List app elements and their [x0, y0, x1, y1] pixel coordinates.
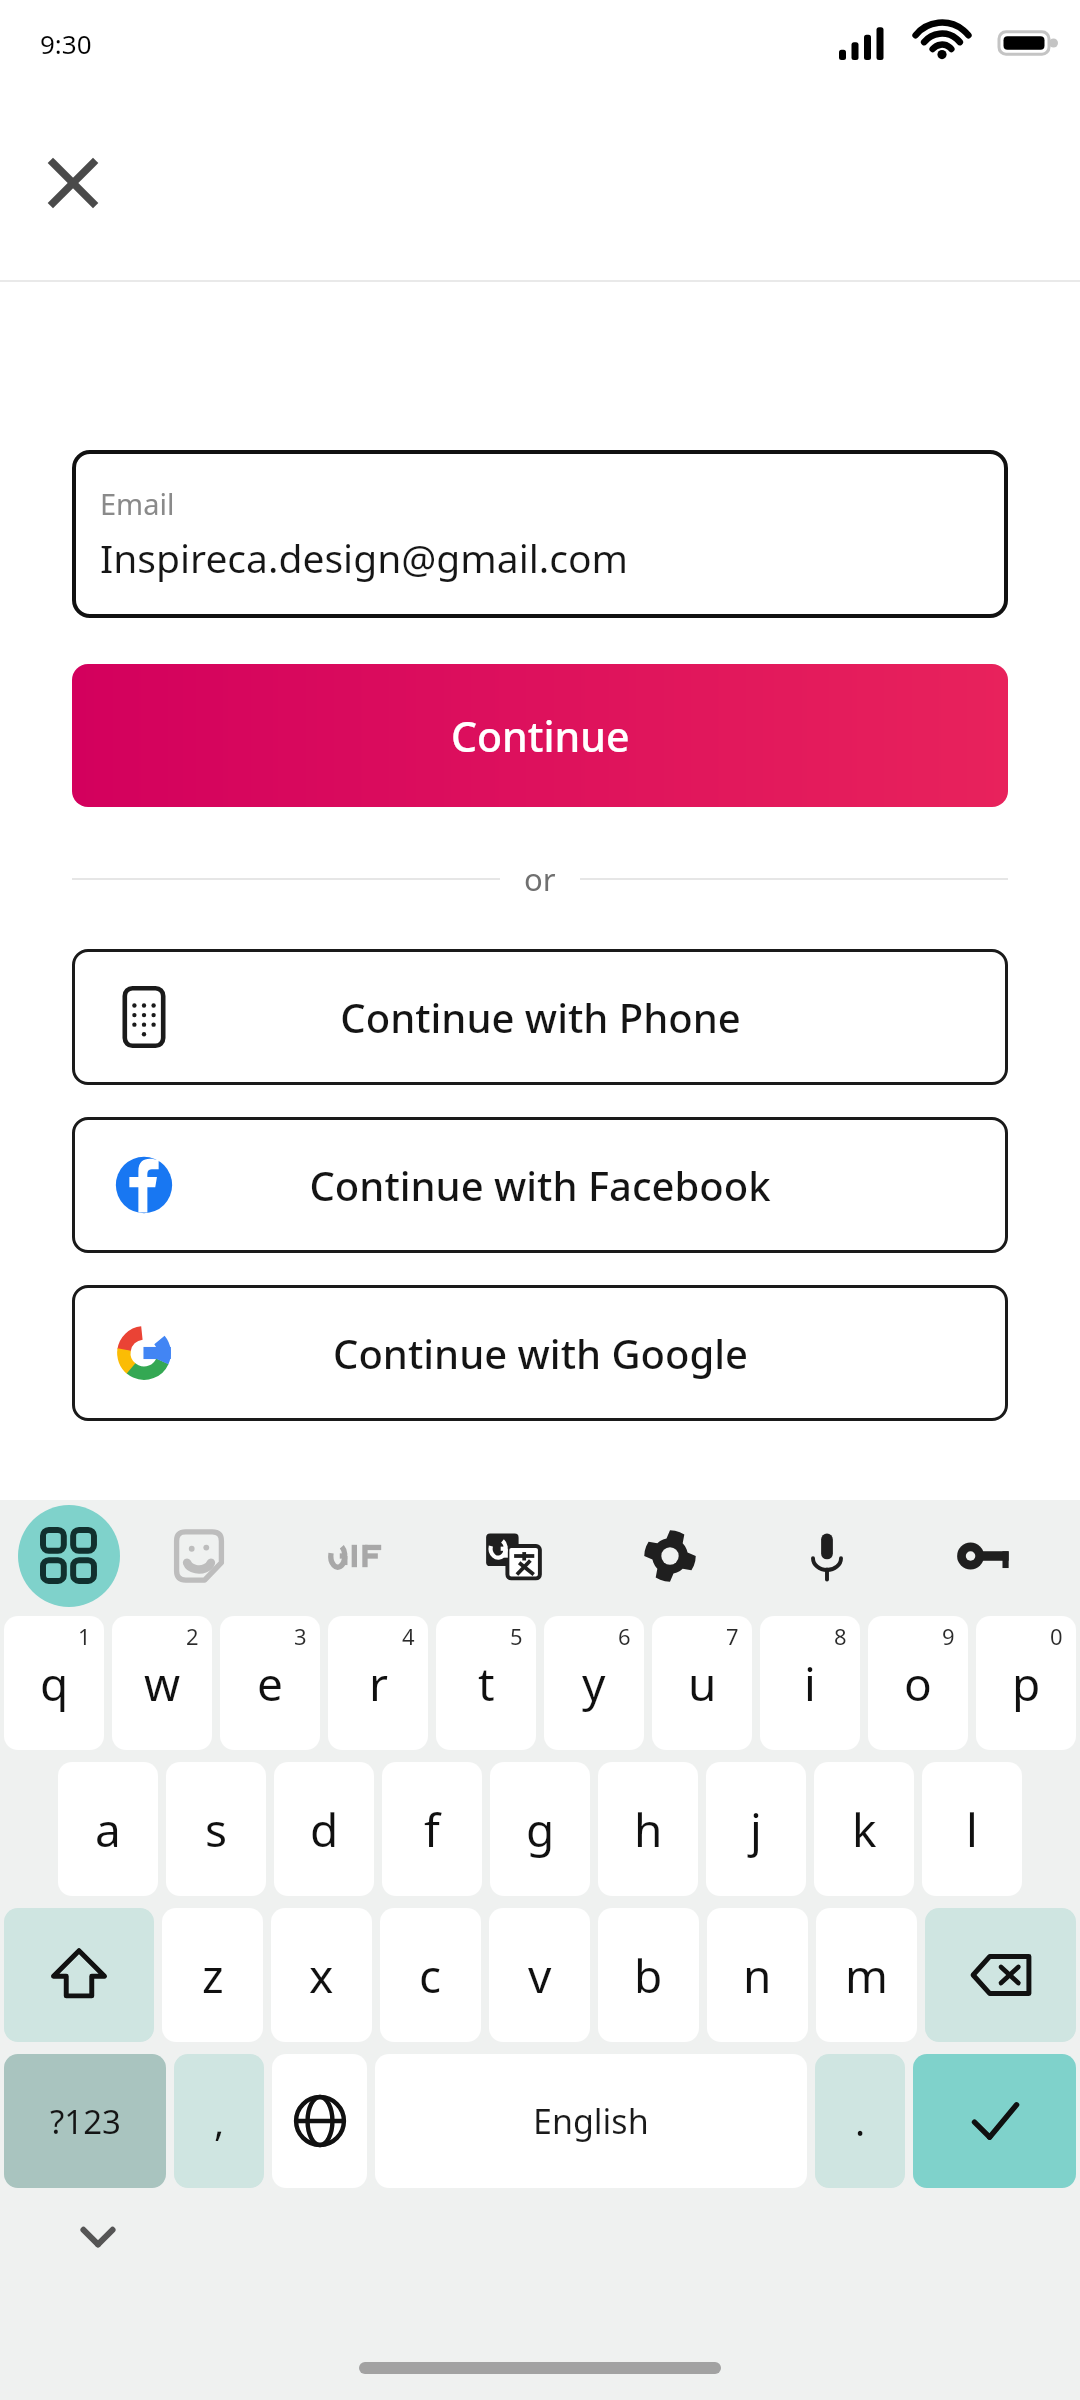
button[interactable]: Continue with Facebook [72, 1117, 1008, 1253]
button[interactable]: z [162, 1908, 263, 2042]
staticText: f [424, 1798, 440, 1861]
staticText: a [95, 1798, 121, 1861]
staticText: Continue with Phone [340, 990, 741, 1044]
button[interactable]: g [490, 1762, 590, 1896]
staticText: 5 [510, 1621, 523, 1651]
button[interactable]: e [220, 1616, 320, 1750]
staticText: 7 [726, 1621, 739, 1651]
button[interactable]: f [382, 1762, 482, 1896]
staticText: 9 [942, 1621, 955, 1651]
staticText: l [966, 1798, 978, 1861]
button[interactable]: Voice input [748, 1500, 905, 1612]
button[interactable]: English [375, 2054, 807, 2188]
staticText: 8 [834, 1621, 847, 1651]
staticText: ?123 [50, 2099, 121, 2144]
button[interactable]: p [976, 1616, 1076, 1750]
staticText: i [804, 1652, 816, 1715]
staticText: Continue with Google [333, 1326, 748, 1380]
button[interactable]: r [328, 1616, 428, 1750]
staticText: or [524, 858, 556, 900]
staticText: h [634, 1798, 663, 1861]
staticText: d [310, 1798, 339, 1861]
staticText: 9:30 [40, 26, 92, 61]
button[interactable]: t [436, 1616, 536, 1750]
button[interactable]: m [816, 1908, 917, 2042]
staticText: 1 [78, 1621, 91, 1651]
button[interactable]: Continue with Google [72, 1285, 1008, 1421]
staticText: e [257, 1652, 283, 1715]
staticText: 4 [402, 1621, 415, 1651]
staticText: 6 [618, 1621, 631, 1651]
button[interactable]: GIF [277, 1500, 434, 1612]
button[interactable]: h [598, 1762, 698, 1896]
button[interactable]: j [706, 1762, 806, 1896]
button[interactable]: Hide keyboard [72, 2210, 124, 2262]
button[interactable]: , [174, 2054, 264, 2188]
staticText: k [852, 1798, 877, 1861]
button[interactable]: c [380, 1908, 481, 2042]
staticText: z [202, 1944, 224, 2007]
button[interactable]: n [707, 1908, 808, 2042]
staticText: s [205, 1798, 228, 1861]
button[interactable]: Apps [18, 1505, 120, 1607]
staticText: m [845, 1944, 889, 2007]
staticText: 0 [1050, 1621, 1063, 1651]
staticText: English [533, 2098, 649, 2144]
button[interactable]: Passwords [905, 1500, 1062, 1612]
button[interactable]: q [4, 1616, 104, 1750]
staticText: g [526, 1798, 555, 1861]
button[interactable]: u [652, 1616, 752, 1750]
staticText: r [369, 1652, 388, 1715]
staticText: Continue with Facebook [309, 1158, 771, 1212]
button[interactable]: Translate [434, 1500, 591, 1612]
button[interactable]: Close [42, 152, 104, 214]
staticText: p [1012, 1652, 1041, 1715]
button[interactable]: Enter [913, 2054, 1076, 2188]
button[interactable]: ?123 [4, 2054, 166, 2188]
staticText: Email [100, 484, 175, 523]
staticText: , [214, 2095, 225, 2147]
button[interactable]: y [544, 1616, 644, 1750]
button[interactable]: i [760, 1616, 860, 1750]
staticText: q [40, 1652, 69, 1715]
staticText: j [750, 1798, 762, 1861]
staticText: t [478, 1652, 495, 1715]
staticText: . [855, 2095, 866, 2147]
staticText: n [743, 1944, 772, 2007]
button[interactable]: b [598, 1908, 699, 2042]
staticText: y [582, 1652, 606, 1715]
staticText: Inspireca.design@gmail.com [100, 531, 628, 584]
button[interactable]: s [166, 1762, 266, 1896]
button[interactable]: Stickers [120, 1500, 277, 1612]
button[interactable]: x [271, 1908, 372, 2042]
button[interactable]: Continue with Phone [72, 949, 1008, 1085]
button[interactable]: o [868, 1616, 968, 1750]
button[interactable]: Continue [72, 664, 1008, 807]
button[interactable]: k [814, 1762, 914, 1896]
staticText: u [688, 1652, 717, 1715]
button[interactable]: Email [72, 450, 1008, 618]
button[interactable]: . [815, 2054, 905, 2188]
button[interactable]: l [922, 1762, 1022, 1896]
staticText: 2 [186, 1621, 199, 1651]
staticText: c [419, 1944, 442, 2007]
staticText: 3 [294, 1621, 307, 1651]
button[interactable]: w [112, 1616, 212, 1750]
staticText: b [634, 1944, 663, 2007]
staticText: o [904, 1652, 932, 1715]
staticText: w [144, 1652, 181, 1715]
button[interactable]: a [58, 1762, 158, 1896]
button[interactable]: Settings [591, 1500, 748, 1612]
staticText: v [528, 1944, 552, 2007]
button[interactable]: Shift [4, 1908, 154, 2042]
staticText: x [309, 1944, 334, 2007]
button[interactable]: Backspace [925, 1908, 1076, 2042]
button[interactable]: v [489, 1908, 590, 2042]
button[interactable]: d [274, 1762, 374, 1896]
button[interactable]: Change language [272, 2054, 367, 2188]
staticText: Continue [451, 708, 630, 764]
